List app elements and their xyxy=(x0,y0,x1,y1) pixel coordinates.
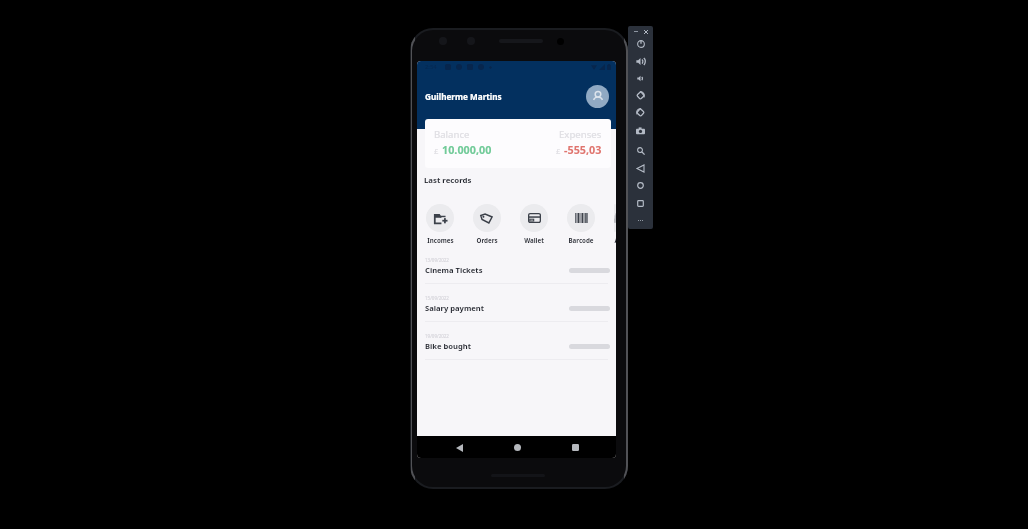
button[interactable]: Rotate left xyxy=(632,87,649,104)
staticText: 10.000,00 xyxy=(442,142,492,157)
button[interactable]: More xyxy=(632,212,649,229)
button[interactable]: Back xyxy=(451,439,468,456)
button[interactable]: Volume up xyxy=(632,53,649,70)
button[interactable]: Volume down xyxy=(632,70,649,87)
button[interactable]: Wallet xyxy=(520,204,548,244)
staticText: Balance xyxy=(434,128,470,141)
button[interactable]: Minimize xyxy=(631,27,641,36)
staticText: 19/09/2022 xyxy=(425,333,449,339)
staticText: Barcode xyxy=(568,236,594,244)
staticText: Analytics xyxy=(614,236,616,244)
button[interactable]: Close xyxy=(641,27,651,36)
staticText: £ xyxy=(556,146,561,156)
staticText: 15/09/2022 xyxy=(425,295,449,301)
button[interactable]: Balance xyxy=(425,119,611,168)
staticText: 13/09/2022 xyxy=(425,257,449,263)
staticText: -555,03 xyxy=(564,142,602,157)
button[interactable]: 19/09/2022 xyxy=(417,329,616,367)
button[interactable]: Zoom xyxy=(632,142,649,159)
button[interactable]: 15/09/2022 xyxy=(417,291,616,329)
button[interactable]: Back xyxy=(632,160,649,177)
staticText: Expenses xyxy=(559,128,602,141)
button[interactable]: Overview xyxy=(632,195,649,212)
staticText: Cinema Tickets xyxy=(425,265,483,275)
button[interactable]: Barcode xyxy=(567,204,595,244)
staticText: Bike bought xyxy=(425,341,472,351)
button[interactable]: Orders xyxy=(473,204,501,244)
staticText: Last records xyxy=(424,175,472,186)
button[interactable]: Power xyxy=(632,35,649,52)
staticText: Guilherme Martins xyxy=(425,91,502,102)
button[interactable]: Recent apps xyxy=(567,439,584,456)
staticText: Orders xyxy=(476,236,498,244)
button[interactable]: 13/09/2022 xyxy=(417,253,616,291)
staticText: Incomes xyxy=(427,236,454,244)
button[interactable]: Rotate right xyxy=(632,104,649,121)
button[interactable]: Profile xyxy=(586,85,609,108)
staticText: £ xyxy=(434,146,439,156)
staticText: Salary payment xyxy=(425,303,485,313)
button[interactable]: Home xyxy=(632,177,649,194)
staticText: Wallet xyxy=(524,236,544,244)
button[interactable]: Home xyxy=(509,439,526,456)
button[interactable]: Analytics xyxy=(614,204,616,244)
button[interactable]: Incomes xyxy=(426,204,454,244)
staticText: 2:54 xyxy=(425,63,437,71)
button[interactable]: Take screenshot xyxy=(632,122,649,139)
